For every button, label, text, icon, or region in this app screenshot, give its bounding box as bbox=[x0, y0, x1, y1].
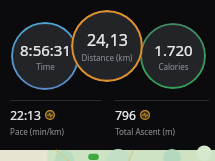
button[interactable]: 22:13 bbox=[0, 100, 107, 137]
button[interactable]: Time 8:56:31 bbox=[11, 22, 79, 90]
button[interactable]: 796 bbox=[107, 100, 215, 137]
staticText: Distance (km) bbox=[81, 52, 133, 63]
other: Heart rate zone bbox=[140, 110, 150, 120]
staticText: 796 bbox=[115, 107, 136, 123]
staticText: Time bbox=[36, 61, 55, 72]
button[interactable]: Calories 1720 bbox=[140, 23, 206, 89]
staticText: 24,13 bbox=[87, 29, 128, 51]
other: Heart rate zone bbox=[45, 110, 55, 120]
staticText: Pace (min/km) bbox=[10, 126, 64, 137]
staticText: 8:56:31 bbox=[20, 40, 71, 60]
button[interactable]: Distance 24,13 km bbox=[71, 10, 143, 82]
staticText: Calories bbox=[158, 61, 189, 72]
staticText: 1.720 bbox=[154, 40, 193, 60]
button[interactable]: Map bbox=[0, 150, 215, 161]
staticText: Total Ascent (m) bbox=[115, 126, 175, 137]
staticText: 22:13 bbox=[10, 107, 41, 123]
